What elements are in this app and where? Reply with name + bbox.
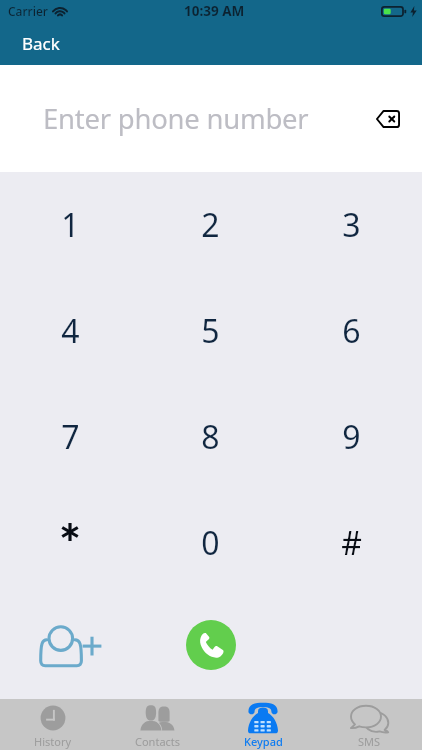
button[interactable]: History — [0, 699, 105, 750]
staticText: 8 — [201, 415, 220, 459]
button[interactable]: Backspace — [366, 97, 410, 141]
button[interactable]: 4 — [0, 278, 140, 384]
button[interactable]: Keypad — [210, 699, 316, 750]
button[interactable]: 1 — [0, 172, 140, 278]
button[interactable]: 0 — [140, 490, 281, 596]
button[interactable]: 8 — [140, 384, 281, 490]
button[interactable]: Add contact — [31, 615, 111, 671]
button[interactable]: Contacts — [105, 699, 210, 750]
staticText: Enter phone number — [43, 100, 309, 137]
button[interactable]: 6 — [281, 278, 422, 384]
staticText: Carrier — [8, 3, 48, 19]
staticText: SMS — [358, 734, 381, 749]
staticText: History — [34, 734, 72, 749]
button[interactable]: 9 — [281, 384, 422, 490]
staticText: 7 — [61, 415, 80, 459]
staticText: 6 — [342, 309, 361, 353]
staticText: 4 — [61, 309, 80, 353]
staticText: 0 — [201, 521, 220, 565]
button[interactable]: 2 — [140, 172, 281, 278]
staticText: 10:39 AM — [184, 2, 245, 20]
button[interactable]: 3 — [281, 172, 422, 278]
button[interactable]: 7 — [0, 384, 140, 490]
button[interactable] — [0, 490, 140, 596]
button[interactable]: Back — [0, 22, 72, 65]
staticText: Contacts — [135, 734, 181, 749]
staticText: 3 — [342, 203, 361, 247]
staticText: 2 — [201, 203, 220, 247]
staticText: Back — [22, 32, 60, 55]
button[interactable]: Call — [186, 620, 236, 670]
staticText: Keypad — [244, 734, 283, 749]
staticText: # — [341, 521, 362, 565]
button[interactable]: # — [281, 490, 422, 596]
button[interactable]: 5 — [140, 278, 281, 384]
button[interactable]: SMS — [316, 699, 422, 750]
staticText: 9 — [342, 415, 361, 459]
staticText: 1 — [61, 203, 80, 247]
staticText: 5 — [201, 309, 220, 353]
